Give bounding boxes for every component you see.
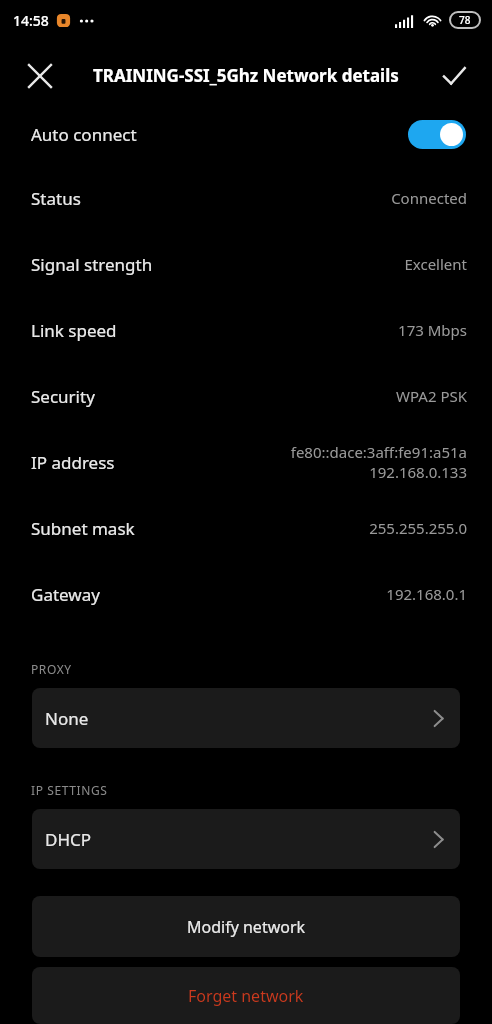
button[interactable]: None xyxy=(32,688,460,748)
staticText: WPA2 PSK xyxy=(396,386,467,406)
staticText: Modify network xyxy=(187,916,306,938)
button[interactable]: Auto connect toggle xyxy=(408,120,466,149)
staticText: Security xyxy=(31,385,396,408)
staticText: IP address xyxy=(31,451,290,474)
staticText: Signal strength xyxy=(31,253,404,276)
button[interactable]: Gateway xyxy=(0,561,492,627)
staticText: Gateway xyxy=(31,583,386,606)
staticText: Auto connect xyxy=(31,123,408,146)
staticText: Link speed xyxy=(31,319,398,342)
staticText: Excellent xyxy=(404,254,467,274)
button[interactable]: Close xyxy=(16,52,64,100)
staticText: PROXY xyxy=(31,661,72,677)
button[interactable]: Save xyxy=(430,52,478,100)
staticText: Subnet mask xyxy=(31,517,369,540)
staticText: Forget network xyxy=(188,985,304,1007)
staticText: 192.168.0.1 xyxy=(386,584,467,604)
staticText: DHCP xyxy=(45,828,92,851)
button[interactable]: IP address xyxy=(0,429,492,495)
button[interactable]: Signal strength xyxy=(0,231,492,297)
button[interactable]: DHCP xyxy=(32,809,460,869)
staticText: 192.168.0.133 xyxy=(369,462,467,482)
button[interactable]: Status xyxy=(0,165,492,231)
staticText: Status xyxy=(31,187,391,210)
button[interactable]: Auto connect xyxy=(0,103,492,165)
button[interactable]: Security xyxy=(0,363,492,429)
staticText: 78 xyxy=(459,13,471,27)
staticText: 255.255.255.0 xyxy=(369,518,467,538)
staticText: 173 Mbps xyxy=(398,320,467,340)
staticText: None xyxy=(45,707,89,730)
staticText: Connected xyxy=(391,188,467,208)
staticText: 14:58 xyxy=(13,11,49,30)
button[interactable]: Subnet mask xyxy=(0,495,492,561)
staticText: IP SETTINGS xyxy=(31,782,108,798)
button[interactable]: Link speed xyxy=(0,297,492,363)
staticText: TRAINING-SSI_5Ghz Network details xyxy=(93,64,399,87)
staticText: fe80::dace:3aff:fe91:a51a xyxy=(290,442,467,462)
button[interactable]: Forget network xyxy=(32,967,460,1024)
button[interactable]: Modify network xyxy=(32,896,460,957)
